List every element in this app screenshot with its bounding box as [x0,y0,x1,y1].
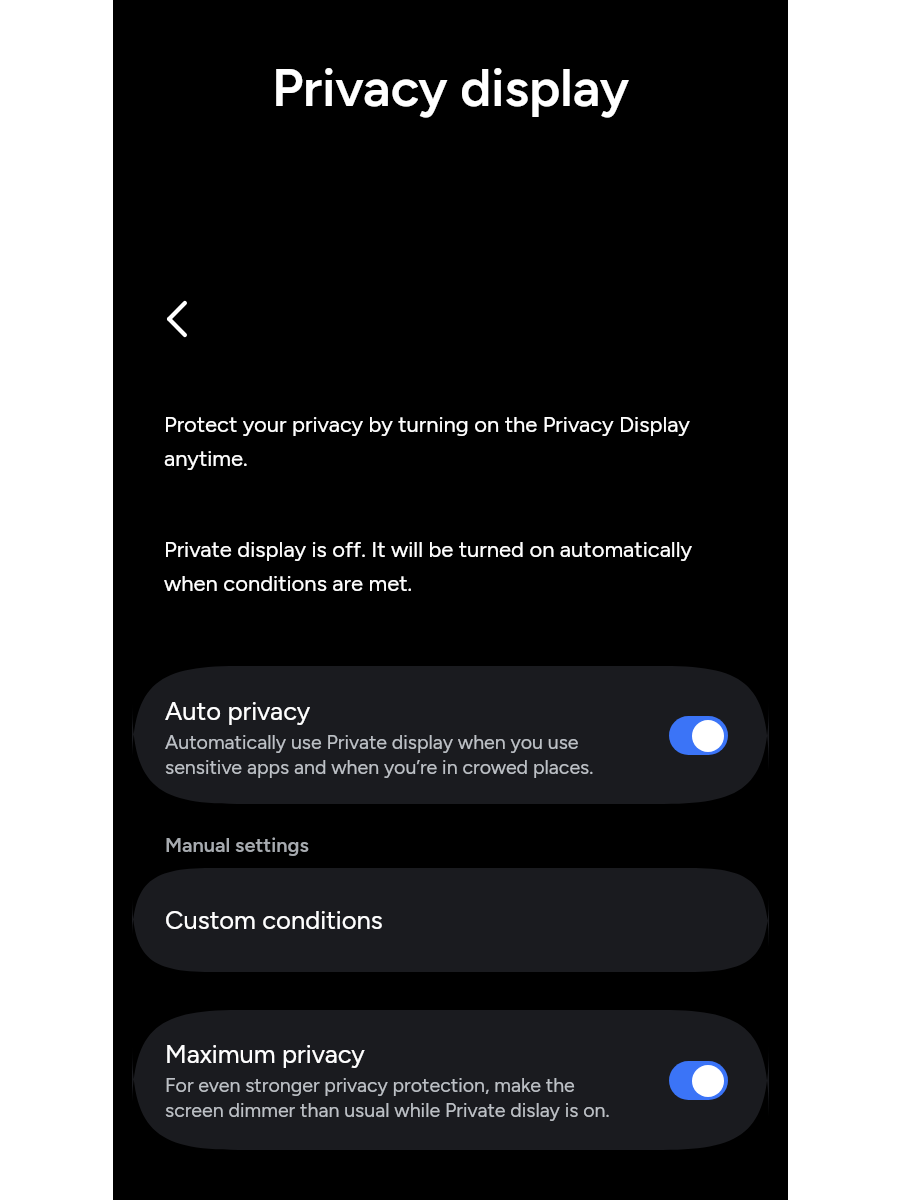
staticText: Manual settings [165,833,309,857]
staticText: Protect your privacy by turning on the P… [164,411,699,471]
staticText: For even stronger privacy protection, ma… [165,1073,610,1122]
button[interactable]: Toggle on [669,716,728,755]
button[interactable]: Custom conditions [132,868,769,972]
staticText: Private display is off. It will be turne… [164,536,699,596]
staticText: Privacy display [113,56,788,119]
button[interactable]: Back [149,291,205,347]
button[interactable]: Auto privacy [132,666,769,804]
staticText: Auto privacy [165,696,311,727]
button[interactable]: Maximum privacy [132,1010,769,1150]
staticText: Automatically use Private display when y… [165,730,594,779]
staticText: Maximum privacy [165,1039,365,1070]
button[interactable]: Toggle on [669,1061,728,1100]
staticText: Custom conditions [165,905,383,936]
